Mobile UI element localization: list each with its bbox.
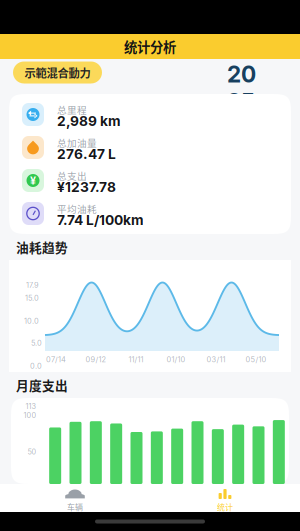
- staticText: 示範混合動力: [24, 64, 90, 81]
- button[interactable]: 统计: [150, 488, 300, 513]
- staticText: 01/10: [166, 355, 185, 364]
- staticText: 11/11: [128, 355, 143, 364]
- staticText: 总里程: [57, 102, 87, 116]
- staticText: 车辆: [67, 501, 83, 513]
- staticText: 09/12: [85, 355, 106, 364]
- staticText: 15.0: [25, 293, 39, 302]
- staticText: 113: [25, 402, 36, 411]
- staticText: 0.0: [30, 361, 42, 370]
- staticText: 统计: [217, 501, 233, 513]
- staticText: 2025: [227, 61, 256, 115]
- staticText: 月度支出: [16, 376, 68, 394]
- staticText: 油耗趋势: [16, 238, 68, 256]
- staticText: 总支出: [57, 168, 87, 182]
- staticText: 100: [23, 411, 36, 420]
- staticText: 统计分析: [124, 37, 176, 56]
- staticText: ¥1237.78: [57, 179, 116, 195]
- staticText: 03/11: [206, 355, 225, 364]
- staticText: 10.0: [24, 316, 39, 325]
- staticText: 17.9: [26, 280, 39, 289]
- staticText: 平均油耗: [57, 201, 97, 215]
- staticText: 2,989 km: [57, 113, 121, 129]
- staticText: 50: [27, 447, 36, 456]
- button[interactable]: 车辆: [0, 488, 150, 513]
- staticText: 07/14: [46, 355, 66, 364]
- staticText: 276.47 L: [57, 146, 116, 162]
- staticText: 05/10: [245, 355, 266, 364]
- staticText: ¥: [30, 174, 36, 187]
- staticText: 总加油量: [57, 135, 97, 149]
- button[interactable]: 示範混合動力: [13, 61, 102, 83]
- staticText: 5.0: [31, 338, 42, 347]
- staticText: 7.74 L/100km: [57, 212, 144, 228]
